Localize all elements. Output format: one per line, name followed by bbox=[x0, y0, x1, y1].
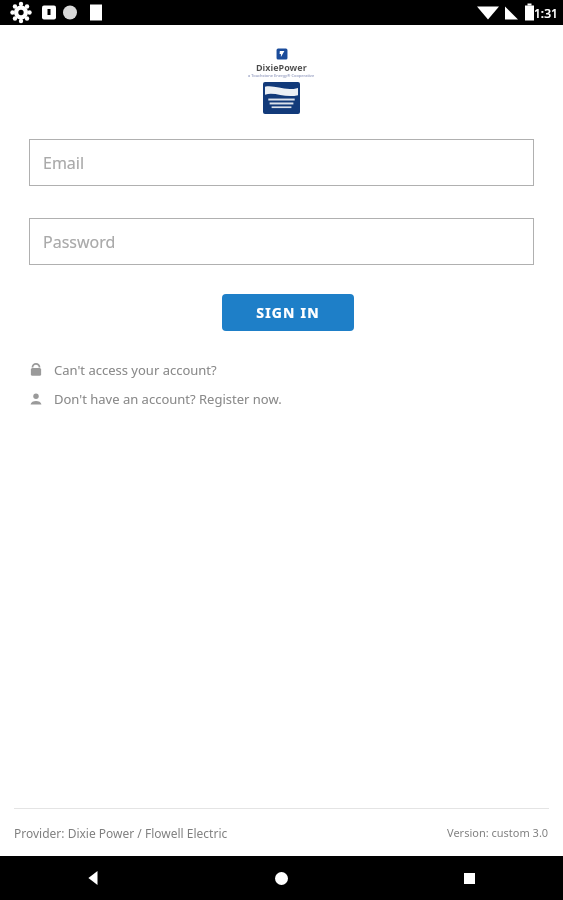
button[interactable]: SIGN IN bbox=[222, 294, 354, 331]
button[interactable]: Forgot password bbox=[0, 359, 563, 381]
button[interactable]: Recents bbox=[375, 856, 563, 900]
staticText: a Touchstone Energy® Cooperative bbox=[248, 73, 315, 78]
staticText: Provider: Dixie Power / Flowell Electric bbox=[14, 825, 228, 841]
button[interactable]: Email bbox=[29, 139, 534, 186]
staticText: Email bbox=[43, 152, 85, 174]
staticText: Password bbox=[43, 231, 116, 253]
other: Forgot password bbox=[28, 362, 44, 378]
staticText: DixiePower bbox=[256, 61, 307, 73]
staticText: SIGN IN bbox=[256, 303, 320, 322]
other: Register bbox=[28, 391, 44, 407]
staticText: Don't have an account? Register now. bbox=[54, 390, 282, 408]
staticText: 1:31 bbox=[534, 5, 558, 21]
staticText: Version: custom 3.0 bbox=[447, 825, 549, 840]
button[interactable]: Back bbox=[0, 856, 187, 900]
button[interactable]: Register bbox=[0, 388, 563, 410]
staticText: Can't access your account? bbox=[54, 361, 217, 379]
button[interactable]: Home bbox=[187, 856, 375, 900]
button[interactable]: Password bbox=[29, 218, 534, 265]
